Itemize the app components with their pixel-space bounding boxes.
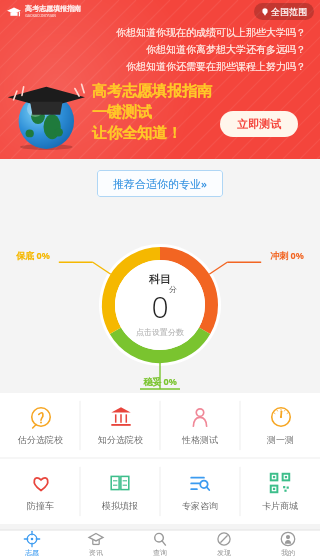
button[interactable]: 我的 <box>256 531 320 557</box>
staticText: 估分选院校 <box>18 434 63 445</box>
staticText: 冲刺 0% <box>270 249 304 261</box>
button[interactable]: 防撞车 <box>0 459 80 524</box>
staticText: 科目 <box>149 272 171 286</box>
staticText: 高考志愿填报指南 <box>92 82 212 101</box>
staticText: 资讯 <box>89 548 103 557</box>
staticText: 我的 <box>281 548 295 557</box>
staticText: 一键测试 <box>92 103 152 122</box>
button[interactable]: 志愿 <box>0 531 64 557</box>
staticText: 推荐合适你的专业» <box>113 176 207 191</box>
staticText: 立即测试 <box>237 117 281 131</box>
button[interactable]: 卡片商城 <box>240 459 320 524</box>
staticText: 卡片商城 <box>262 500 298 511</box>
button[interactable]: 性格测试 <box>160 393 240 458</box>
button[interactable]: 模拟填报 <box>80 459 160 524</box>
staticText: GAOKAO ZHIYUAN <box>25 13 56 18</box>
staticText: 全国范围 <box>271 6 307 17</box>
staticText: 你想知道你还需要在那些课程上努力吗？ <box>126 60 306 73</box>
button[interactable]: 推荐合适你的专业» <box>97 170 223 197</box>
staticText: 点击设置分数 <box>136 327 184 337</box>
staticText: 稳妥 0% <box>143 375 177 387</box>
staticText: 你想知道你现在的成绩可以上那些大学吗？ <box>116 26 306 39</box>
staticText: 知分选院校 <box>98 434 143 445</box>
button[interactable]: 估分选院校 <box>0 393 80 458</box>
button[interactable]: 全国范围 <box>254 3 314 20</box>
staticText: 让你全知道！ <box>92 124 182 143</box>
staticText: 你想知道你离梦想大学还有多远吗？ <box>146 43 306 56</box>
staticText: 防撞车 <box>27 500 54 511</box>
button[interactable]: 发现 <box>192 531 256 557</box>
staticText: 查询 <box>153 548 167 557</box>
button[interactable]: 专家咨询 <box>160 459 240 524</box>
staticText: 性格测试 <box>182 434 218 445</box>
staticText: 分 <box>169 284 177 294</box>
staticText: 发现 <box>217 548 231 557</box>
staticText: 模拟填报 <box>102 500 138 511</box>
staticText: 测一测 <box>267 434 294 445</box>
staticText: 专家咨询 <box>182 500 218 511</box>
button[interactable]: 资讯 <box>64 531 128 557</box>
staticText: 高考志愿填报指南 <box>25 4 81 13</box>
button[interactable]: 立即测试 <box>220 111 298 137</box>
button[interactable]: 测一测 <box>240 393 320 458</box>
button[interactable]: 知分选院校 <box>80 393 160 458</box>
button[interactable]: 查询 <box>128 531 192 557</box>
staticText: 保底 0% <box>16 249 50 261</box>
staticText: 0 <box>151 286 169 327</box>
staticText: 志愿 <box>25 548 39 557</box>
